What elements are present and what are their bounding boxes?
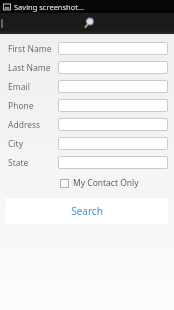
button[interactable]: Address <box>0 115 174 134</box>
staticText: State <box>8 157 29 169</box>
staticText: My Contact Only <box>73 177 139 189</box>
staticText: First Name <box>8 43 52 55</box>
staticText: Phone <box>8 100 34 112</box>
button[interactable]: My Contact Only <box>60 177 139 189</box>
button[interactable]: Email <box>0 77 174 96</box>
button[interactable]: Search <box>0 13 174 34</box>
button[interactable]: State <box>0 153 174 172</box>
staticText: City <box>8 138 23 150</box>
staticText: Search <box>71 204 103 218</box>
button[interactable]: First Name <box>0 39 174 58</box>
button[interactable]: Search <box>6 198 168 224</box>
button[interactable]: Phone <box>0 96 174 115</box>
button[interactable]: City <box>0 134 174 153</box>
staticText: Address <box>8 119 41 131</box>
staticText: Saving screenshot... <box>14 2 85 12</box>
staticText: Last Name <box>8 62 51 74</box>
staticText: Email <box>8 81 30 93</box>
button[interactable]: Last Name <box>0 58 174 77</box>
